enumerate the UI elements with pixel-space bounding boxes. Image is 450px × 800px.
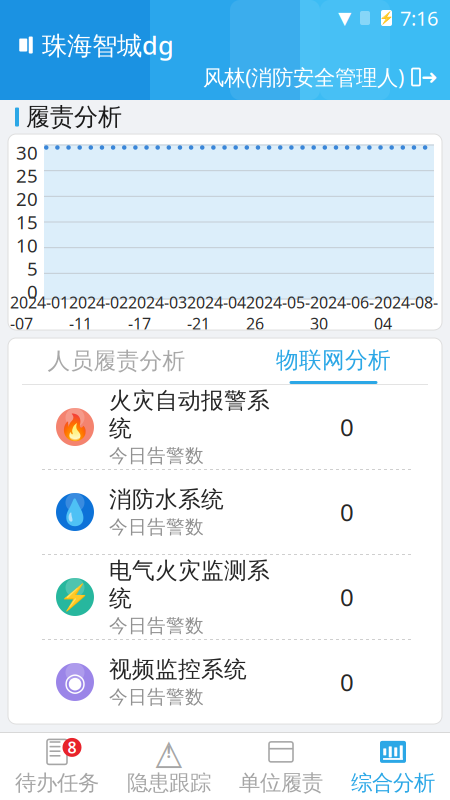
staticText: 电气火灾监测系统 [109,557,270,612]
staticText: 火灾自动报警系统 [109,387,270,442]
staticText: 5 [27,256,38,281]
staticText: 履责分析 [26,102,122,132]
staticText: 珠海智城dg [42,28,174,62]
staticText: 人员履责分析 [47,347,185,375]
staticText: ⚡ [59,582,91,611]
staticText: 今日告警数 [109,614,204,637]
staticText: 0 [340,411,354,443]
button[interactable]: 人员履责分析 [8,339,225,383]
staticText: 今日告警数 [109,685,204,708]
button[interactable]: ◉ [8,640,442,724]
staticText: 0 [340,666,354,698]
button[interactable]: 8 [1,733,113,800]
staticText: 物联网分析 [276,346,391,374]
staticText: ! [166,741,171,762]
staticText: 消防水系统 [109,486,224,513]
staticText: 2024-06-30 [310,292,374,334]
button[interactable]: ⚡ [8,555,442,639]
staticText: 8 [67,737,76,758]
staticText: 隐患跟踪 [127,770,211,796]
staticText: 💧 [59,497,91,526]
staticText: 2024-04-21 [187,292,246,334]
staticText: 单位履责 [239,770,323,796]
staticText: ◉ [64,668,86,696]
staticText: 10 [16,233,38,258]
button[interactable]: 退出登录 [203,63,450,91]
button[interactable]: 🔥 [8,385,442,469]
staticText: 2024-02-11 [69,292,128,334]
button[interactable]: 单位履责 [225,733,337,800]
staticText: ▼ [338,8,351,28]
staticText: 2024-03-17 [128,292,187,334]
staticText: 0 [340,496,354,528]
staticText: 30 [16,140,38,165]
staticText: 2024-05-26 [246,292,310,334]
staticText: △ [155,732,182,771]
button[interactable]: 物联网分析 [225,338,442,384]
staticText: 综合分析 [351,770,435,796]
staticText: 7:16 [400,5,438,31]
staticText: 15 [16,210,38,234]
staticText: ➜ [421,66,438,88]
staticText: 2024-01-07 [10,292,69,334]
staticText: 风林(消防安全管理人) [203,63,404,91]
staticText: 0 [340,581,354,613]
staticText: 25 [16,163,38,188]
staticText: ⚡ [379,11,394,25]
staticText: 视频监控系统 [109,656,247,683]
staticText: 🔥 [59,412,91,441]
staticText: 20 [16,186,38,211]
staticText: 0 [27,279,38,304]
button[interactable]: 💧 [8,470,442,554]
staticText: 2024-08-04 [374,292,438,334]
staticText: 今日告警数 [109,444,204,467]
button[interactable]: △ [113,733,225,800]
staticText: 待办任务 [15,770,99,796]
button[interactable]: 综合分析 [337,733,449,800]
staticText: 今日告警数 [109,515,204,538]
